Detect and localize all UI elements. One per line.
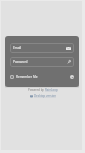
- staticText: Powered by: [28, 88, 45, 92]
- staticText: Email: [13, 46, 22, 50]
- button[interactable]: Email: [10, 43, 74, 53]
- staticText: Password: [13, 60, 28, 64]
- button[interactable]: Desktop version: [30, 94, 56, 98]
- button[interactable]: RainLoop: [45, 88, 58, 92]
- button[interactable]: Remember Me: [10, 75, 38, 79]
- staticText: Desktop version: [34, 94, 56, 98]
- button[interactable]: Sign in: [70, 75, 74, 79]
- button[interactable]: Password: [10, 57, 74, 67]
- staticText: Remember Me: [16, 75, 38, 79]
